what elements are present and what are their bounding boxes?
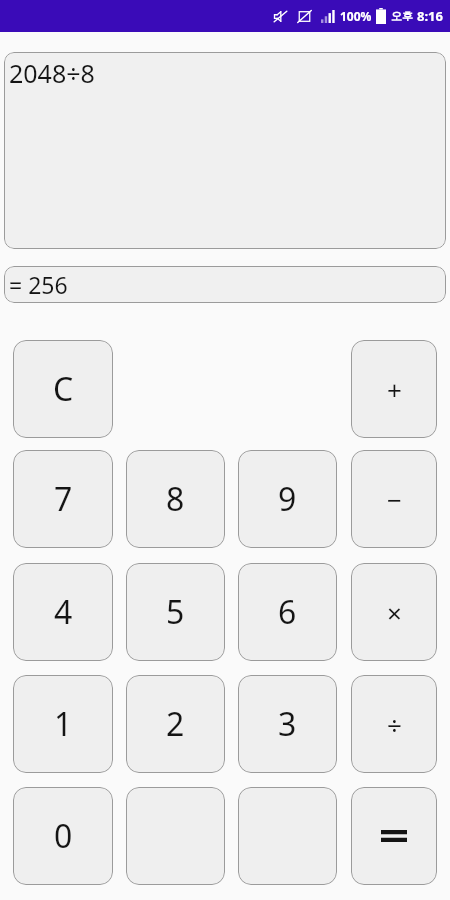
button[interactable]: 6 xyxy=(238,563,337,661)
button[interactable]: Divide xyxy=(351,675,437,773)
button[interactable]: Blank xyxy=(126,787,225,885)
staticText: = 256 xyxy=(9,269,68,300)
staticText: − xyxy=(387,482,402,517)
staticText: × xyxy=(387,595,402,630)
staticText: 100% xyxy=(340,8,372,24)
button[interactable]: Plus xyxy=(351,340,437,438)
staticText: 1 xyxy=(54,702,73,746)
button[interactable]: Minus xyxy=(351,450,437,548)
button[interactable]: Equals xyxy=(351,787,437,885)
staticText: 오후 xyxy=(391,9,413,23)
button[interactable]: 9 xyxy=(238,450,337,548)
staticText: 4 xyxy=(54,590,73,634)
button[interactable]: 7 xyxy=(13,450,113,548)
button[interactable]: Blank xyxy=(238,787,337,885)
staticText: C xyxy=(53,367,74,411)
button[interactable]: C xyxy=(13,340,113,438)
button[interactable]: 8 xyxy=(126,450,225,548)
staticText: 6 xyxy=(278,590,297,634)
staticText: 7 xyxy=(54,477,73,521)
staticText: 8 xyxy=(166,477,185,521)
staticText: 9 xyxy=(278,477,297,521)
staticText: 3 xyxy=(278,702,297,746)
staticText: 2048÷8 xyxy=(9,56,95,90)
button[interactable]: = 256 xyxy=(4,266,446,303)
staticText: 0 xyxy=(54,814,73,858)
staticText: 5 xyxy=(166,590,185,634)
button[interactable]: Multiply xyxy=(351,563,437,661)
button[interactable]: 0 xyxy=(13,787,113,885)
staticText: 8:16 xyxy=(417,7,443,25)
button[interactable]: 5 xyxy=(126,563,225,661)
button[interactable]: 4 xyxy=(13,563,113,661)
staticText: ÷ xyxy=(387,707,402,742)
button[interactable]: 2048÷8 xyxy=(4,52,446,249)
staticText: 2 xyxy=(166,702,185,746)
button[interactable]: 2 xyxy=(126,675,225,773)
button[interactable]: 3 xyxy=(238,675,337,773)
staticText: + xyxy=(387,372,402,407)
button[interactable]: 1 xyxy=(13,675,113,773)
